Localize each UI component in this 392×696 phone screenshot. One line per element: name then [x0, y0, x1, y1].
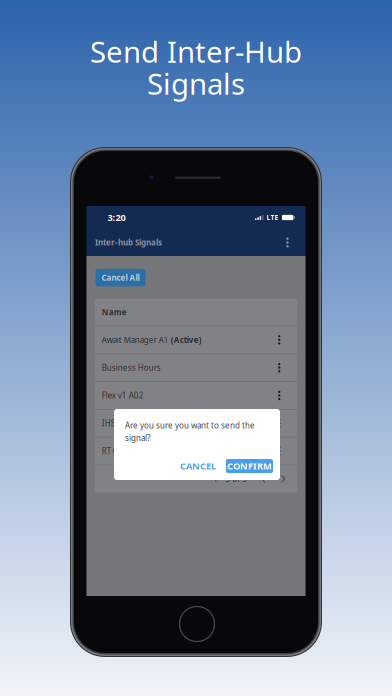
button[interactable]: Row actions	[272, 359, 286, 377]
button[interactable]: Row actions	[272, 414, 286, 432]
button[interactable]: Cancel All	[95, 269, 145, 286]
staticText: IHS Hours Set 1	[102, 418, 161, 428]
staticText: Send Inter-Hub	[90, 32, 302, 71]
staticText: Are you sure you want to send the	[125, 420, 255, 431]
staticText: Name	[102, 307, 127, 317]
staticText: LTE	[266, 213, 278, 222]
button[interactable]: CANCEL	[175, 459, 221, 473]
staticText: Await Manager A1	[102, 334, 171, 345]
staticText: Cancel All	[101, 272, 139, 283]
staticText: 1 - 5 of 5	[213, 473, 247, 484]
staticText: Signals	[147, 64, 245, 103]
button[interactable]: Row actions	[272, 331, 286, 349]
staticText: Inter-hub Signals	[95, 237, 162, 248]
button[interactable]: CONFIRM	[226, 459, 273, 473]
staticText: CONFIRM	[227, 460, 272, 472]
staticText: 3:20	[107, 211, 125, 224]
staticText: signal?	[125, 433, 150, 443]
staticText: Flex v1 A02	[102, 390, 144, 401]
staticText: RT Overflow A1	[102, 446, 159, 456]
button[interactable]: Row actions	[272, 386, 286, 404]
button[interactable]: Next page	[277, 471, 289, 487]
staticText: CANCEL	[180, 460, 216, 472]
button[interactable]: Row actions	[272, 442, 286, 460]
staticText: (Active)	[171, 334, 202, 345]
staticText: Business Hours	[102, 362, 161, 373]
button[interactable]: More options	[280, 233, 294, 251]
button[interactable]: Previous page	[257, 471, 269, 487]
